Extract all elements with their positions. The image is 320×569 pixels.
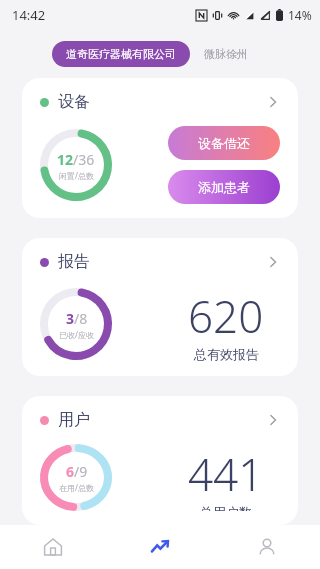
staticText: 总用户数 xyxy=(200,504,252,511)
button[interactable]: 设备借还 xyxy=(168,126,280,160)
staticText: 总有效报告 xyxy=(194,346,259,362)
button[interactable]: 报告 xyxy=(40,252,280,272)
staticText: 闲置/总数 xyxy=(59,170,94,181)
button[interactable]: 设备 xyxy=(22,78,298,218)
staticText: 用户 xyxy=(58,410,90,430)
staticText: 道奇医疗器械有限公司 xyxy=(66,47,176,61)
staticText: 441 xyxy=(188,444,264,504)
staticText: 6/9 xyxy=(66,462,88,481)
staticText: 微脉徐州 xyxy=(204,47,248,61)
staticText: 14% xyxy=(288,7,312,23)
staticText: 设备借还 xyxy=(198,135,250,151)
button[interactable]: Home xyxy=(0,525,106,569)
staticText: 620 xyxy=(188,286,264,346)
button[interactable]: Profile xyxy=(213,525,320,569)
button[interactable]: 道奇医疗器械有限公司 xyxy=(52,41,190,67)
staticText: 已收/应收 xyxy=(59,329,94,340)
staticText: 在用/总数 xyxy=(59,482,94,493)
button[interactable]: 设备 xyxy=(40,92,280,112)
button[interactable]: 用户 xyxy=(40,410,280,430)
button[interactable]: 用户 xyxy=(22,396,298,525)
staticText: 12/36 xyxy=(57,150,95,169)
button[interactable]: 添加患者 xyxy=(168,170,280,204)
staticText: 设备 xyxy=(58,92,90,112)
staticText: 报告 xyxy=(58,252,90,272)
other: Open 设备 xyxy=(266,95,280,109)
button[interactable]: 微脉徐州 xyxy=(190,41,262,67)
staticText: 添加患者 xyxy=(198,179,250,195)
button[interactable]: Statistics xyxy=(106,525,213,569)
other: Open 用户 xyxy=(266,413,280,427)
button[interactable]: 报告 xyxy=(22,238,298,376)
staticText: 14:42 xyxy=(12,6,46,24)
staticText: 3/8 xyxy=(66,309,88,328)
other: Open 报告 xyxy=(266,255,280,269)
